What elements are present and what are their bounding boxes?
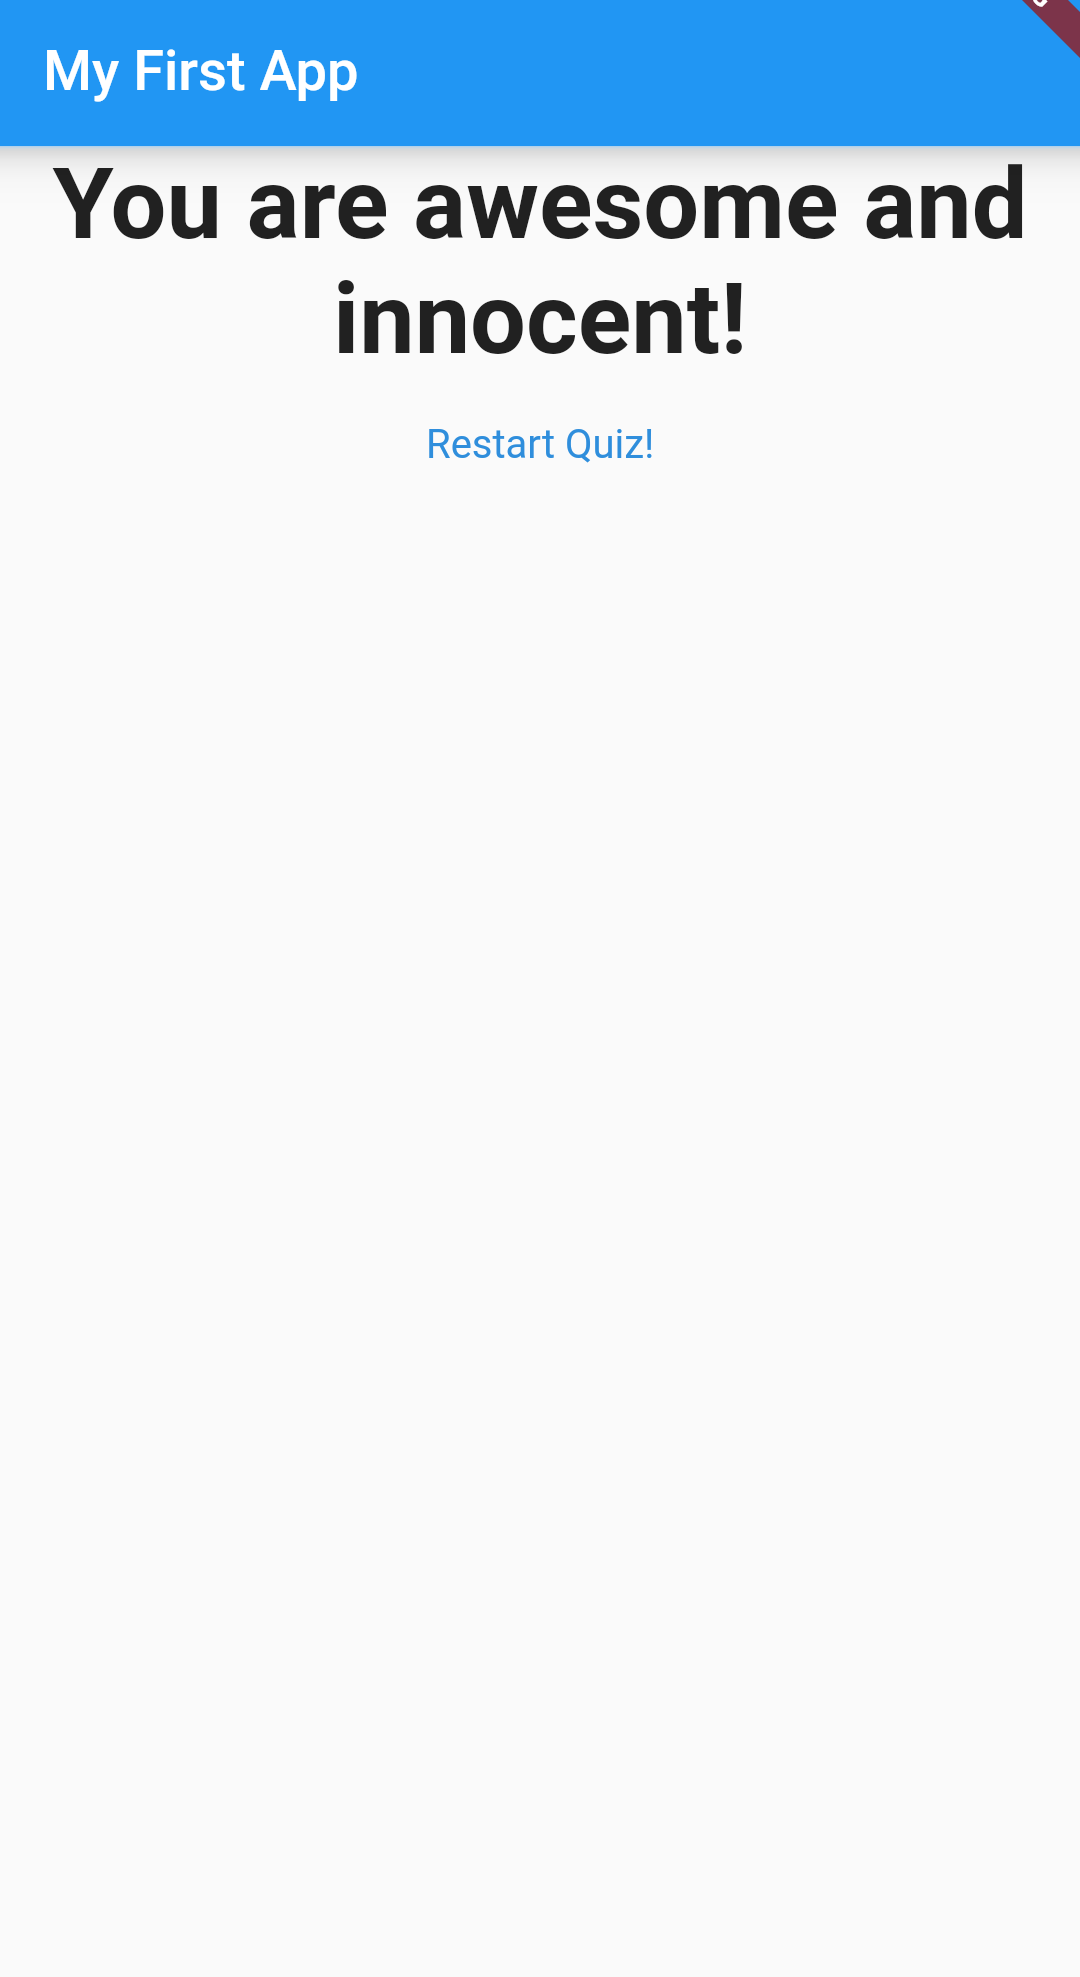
staticText: You are awesome and innocent! [0,146,1080,377]
staticText: My First App [43,38,359,104]
other: Debug banner [990,0,1080,90]
staticText: Restart Quiz! [426,421,655,468]
button[interactable]: Restart Quiz! [408,413,673,476]
